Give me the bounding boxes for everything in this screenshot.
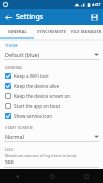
button[interactable]: Default (blue)	[0, 49, 103, 60]
staticText: Start the app on boot	[14, 103, 61, 109]
button[interactable]: Keep a WiFi lock	[0, 71, 103, 81]
staticText: LOG	[5, 147, 14, 152]
staticText: Keep the device screen on	[14, 93, 71, 99]
staticText: Settings	[16, 12, 44, 22]
button[interactable]: Back	[2, 11, 14, 23]
staticText: GENERAL	[8, 29, 27, 34]
button[interactable]: Back	[0, 169, 35, 183]
staticText: Keep the device alive	[14, 83, 60, 89]
staticText: 4:07	[92, 2, 101, 8]
button[interactable]: Show service icon	[0, 111, 103, 121]
staticText: START SCREEN	[5, 125, 33, 130]
staticText: THEME	[5, 43, 19, 48]
staticText: SYNC/REMOTE	[37, 29, 67, 34]
button[interactable]: GENERAL	[0, 25, 35, 37]
staticText: Default (blue)	[5, 51, 40, 58]
button[interactable]: Keep the device alive	[0, 81, 103, 91]
staticText: FILE MANAGER	[71, 29, 102, 34]
button[interactable]: Start the app on boot	[0, 101, 103, 111]
staticText: Keep a WiFi lock	[14, 73, 49, 79]
button[interactable]: Keep the device screen on	[0, 91, 103, 101]
button[interactable]: Save	[88, 11, 100, 23]
button[interactable]: SYNC/REMOTE	[35, 25, 69, 37]
button[interactable]: Normal	[0, 131, 103, 142]
staticText: GENERAL	[5, 65, 23, 70]
staticText: 500	[5, 159, 14, 166]
staticText: Maximum amount of log items to keep:	[5, 153, 78, 158]
button[interactable]: Recents	[69, 169, 103, 183]
button[interactable]: FILE MANAGER	[69, 25, 103, 37]
button[interactable]: Home	[35, 169, 69, 183]
staticText: Show service icon	[14, 113, 53, 119]
button[interactable]: 500	[0, 159, 103, 168]
staticText: Normal	[5, 133, 25, 140]
